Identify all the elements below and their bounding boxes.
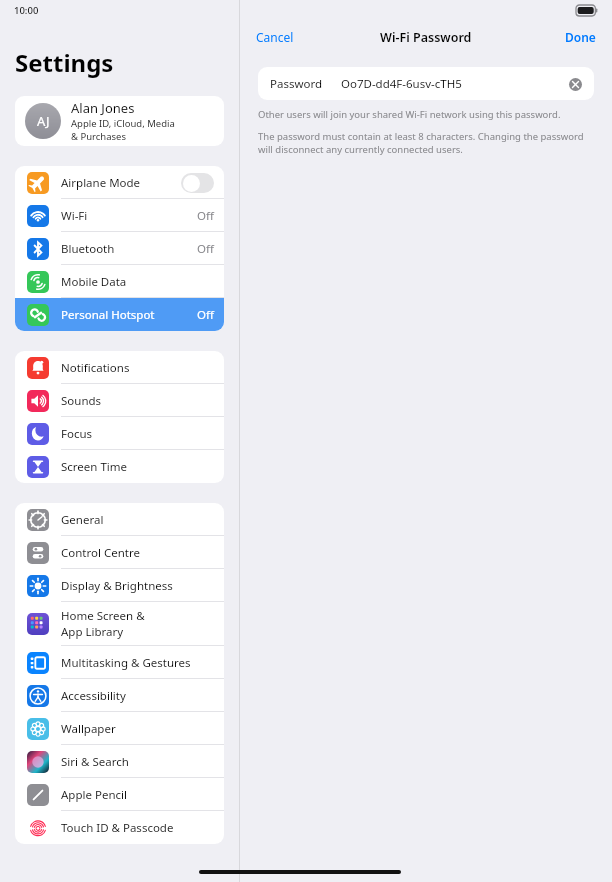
button[interactable]: Siri & Search — [15, 745, 224, 778]
staticText: Apple ID, iCloud, Media — [71, 117, 175, 130]
button[interactable]: Home Screen & — [15, 602, 224, 646]
staticText: Control Centre — [61, 545, 140, 561]
staticText: Accessibility — [61, 688, 126, 704]
button[interactable]: AJ — [15, 96, 224, 146]
staticText: Multitasking & Gestures — [61, 655, 191, 671]
button[interactable]: Airplane Mode — [15, 166, 224, 199]
staticText: Alan Jones — [71, 99, 135, 117]
staticText: Home Screen & — [61, 608, 145, 624]
staticText: Password — [270, 76, 323, 92]
staticText: Bluetooth — [61, 241, 115, 257]
button[interactable]: Done — [557, 25, 604, 49]
button[interactable]: Cancel — [248, 25, 302, 49]
button[interactable]: Personal Hotspot — [15, 298, 224, 331]
staticText: Cancel — [256, 29, 294, 45]
button[interactable]: Password — [258, 67, 594, 100]
button[interactable]: Bluetooth — [15, 232, 224, 265]
staticText: Apple Pencil — [61, 787, 127, 803]
staticText: Oo7D-dd4F-6usv-cTH5 — [341, 76, 566, 92]
staticText: Notifications — [61, 360, 130, 376]
staticText: App Library — [61, 624, 124, 640]
staticText: General — [61, 512, 104, 528]
button[interactable]: Display & Brightness — [15, 569, 224, 602]
staticText: Off — [197, 241, 214, 257]
staticText: Display & Brightness — [61, 578, 173, 594]
staticText: Sounds — [61, 393, 102, 409]
staticText: Wi-Fi Password — [380, 29, 472, 46]
staticText: 10:00 — [14, 4, 39, 17]
staticText: Settings — [15, 46, 114, 79]
button[interactable]: Accessibility — [15, 679, 224, 712]
staticText: Other users will join your shared Wi-Fi … — [258, 108, 561, 121]
staticText: & Purchases — [71, 130, 126, 143]
button[interactable]: Screen Time — [15, 450, 224, 483]
button[interactable]: Wallpaper — [15, 712, 224, 745]
button[interactable]: Apple Pencil — [15, 778, 224, 811]
staticText: Personal Hotspot — [61, 307, 155, 323]
staticText: Screen Time — [61, 459, 128, 475]
button[interactable]: Focus — [15, 417, 224, 450]
staticText: Off — [197, 307, 214, 323]
staticText: Siri & Search — [61, 754, 129, 770]
button[interactable]: Clear text — [566, 75, 584, 93]
staticText: AJ — [37, 112, 50, 130]
button[interactable]: Control Centre — [15, 536, 224, 569]
staticText: The password must contain at least 8 cha… — [258, 130, 594, 156]
button[interactable]: Wi-Fi — [15, 199, 224, 232]
staticText: Done — [565, 29, 596, 45]
button[interactable]: Notifications — [15, 351, 224, 384]
staticText: Off — [197, 208, 214, 224]
staticText: Mobile Data — [61, 274, 127, 290]
staticText: Wallpaper — [61, 721, 116, 737]
button[interactable]: General — [15, 503, 224, 536]
button[interactable]: Multitasking & Gestures — [15, 646, 224, 679]
staticText: Wi-Fi — [61, 208, 88, 224]
button[interactable]: Mobile Data — [15, 265, 224, 298]
staticText: Touch ID & Passcode — [61, 820, 174, 836]
staticText: Focus — [61, 426, 93, 442]
button[interactable]: Touch ID & Passcode — [15, 811, 224, 844]
staticText: Airplane Mode — [61, 175, 141, 191]
button[interactable]: Sounds — [15, 384, 224, 417]
